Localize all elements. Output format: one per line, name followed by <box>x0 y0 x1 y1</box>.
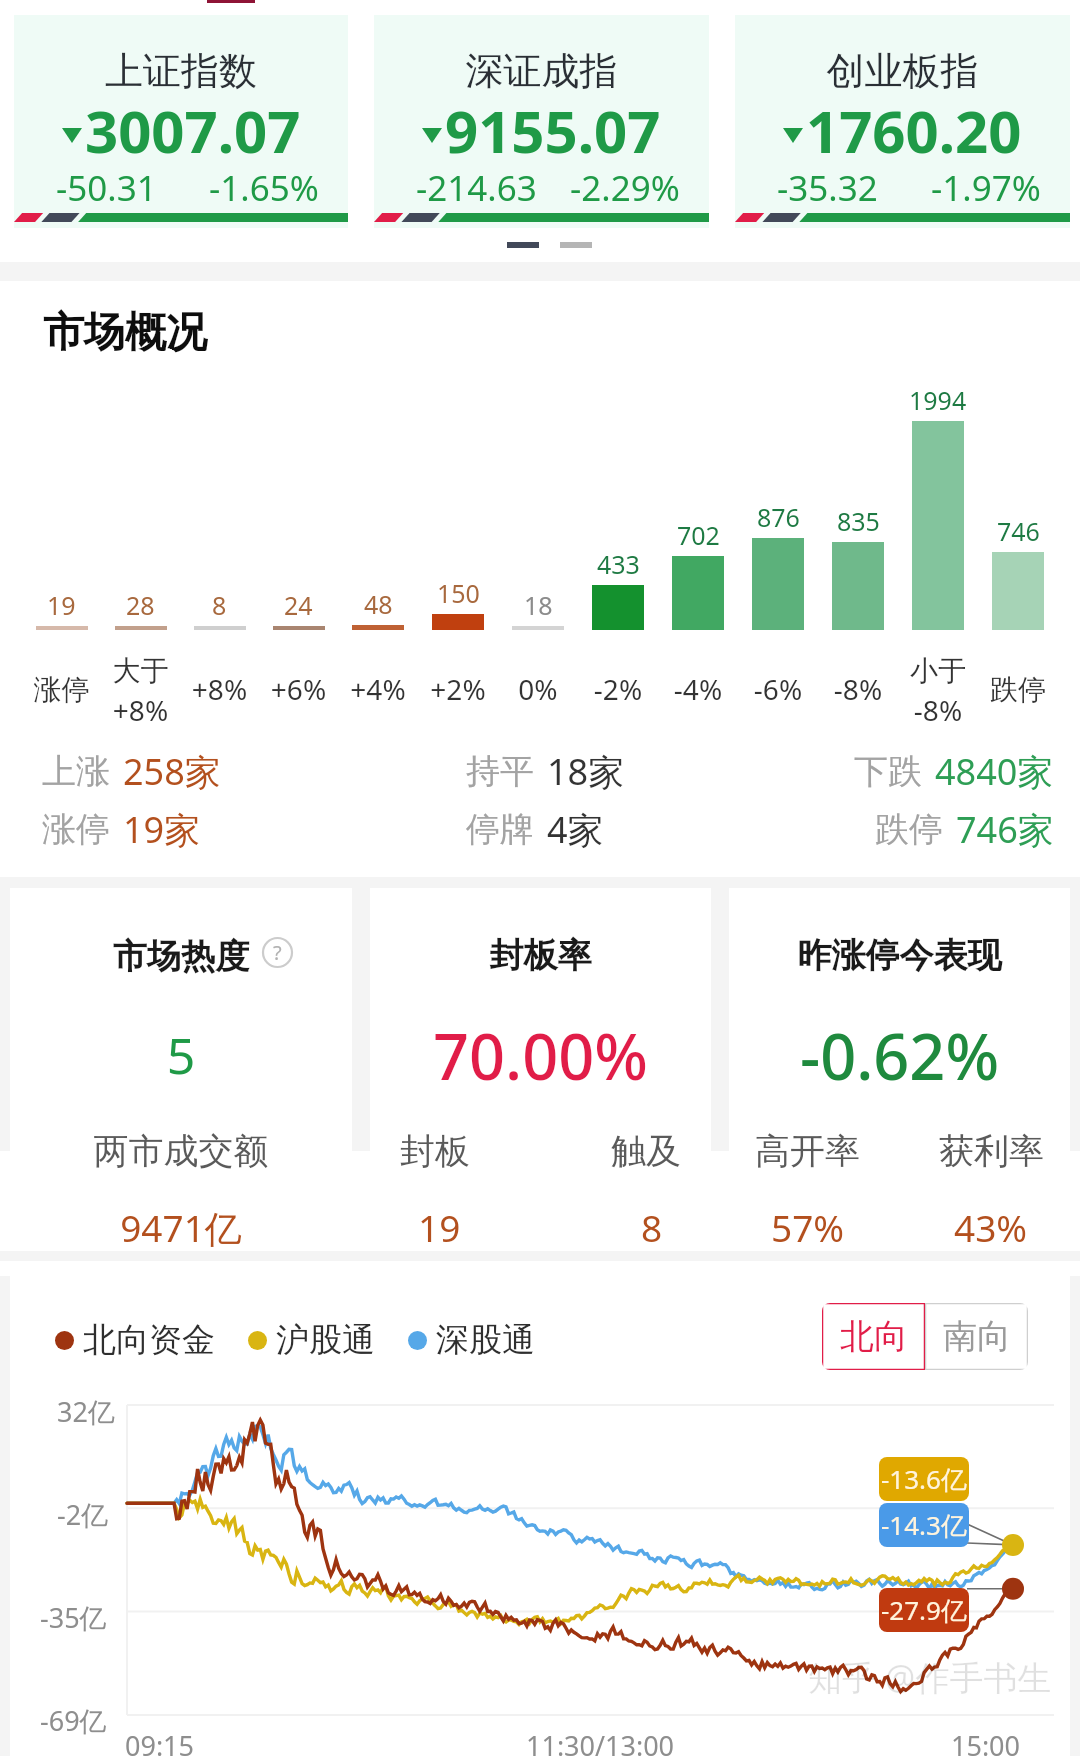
staticText: -27.9亿 <box>881 1592 967 1628</box>
staticText: -69亿 <box>40 1702 107 1739</box>
staticText: -0.62% <box>729 1013 1070 1099</box>
staticText: -2% <box>578 670 658 708</box>
staticText: 昨涨停今表现 <box>729 934 1070 977</box>
staticText: 0% <box>498 670 578 708</box>
staticText: 746 <box>997 514 1040 548</box>
staticText: 11:30/13:00 <box>526 1727 675 1756</box>
staticText: 9471亿 <box>10 1202 352 1253</box>
staticText: -4% <box>658 670 738 708</box>
button[interactable]: 上证指数 <box>14 15 348 228</box>
staticText: 1760.20 <box>806 91 1022 170</box>
staticText: 28 <box>126 588 155 622</box>
staticText: 上证指数 <box>14 47 348 95</box>
staticText: 持平 <box>466 750 534 793</box>
staticText: 48 <box>364 587 393 621</box>
staticText: 18 <box>524 588 553 622</box>
staticText: 43% <box>954 1202 1028 1252</box>
staticText: 两市成交额 <box>10 1129 352 1173</box>
staticText: 涨停 <box>42 808 110 851</box>
staticText: +8% <box>180 670 259 708</box>
staticText: 知乎 @作手书生 <box>808 1654 1052 1700</box>
staticText: 大于 +8% <box>101 653 180 725</box>
staticText: 9155.07 <box>445 91 661 170</box>
staticText: 跌停 <box>978 672 1058 707</box>
staticText: 8 <box>641 1202 663 1252</box>
staticText: 深股通 <box>436 1319 535 1361</box>
staticText: 小于 -8% <box>898 653 978 725</box>
staticText: 19 <box>418 1202 461 1252</box>
staticText: 15:00 <box>951 1727 1021 1756</box>
button[interactable]: 深股通 <box>408 1319 535 1361</box>
button[interactable]: 南向 <box>925 1303 1028 1370</box>
staticText: -6% <box>738 670 818 708</box>
staticText: 北向 <box>840 1315 908 1358</box>
button[interactable]: 昨涨停今表现 <box>729 888 1070 1251</box>
staticText: +2% <box>418 670 498 708</box>
staticText: 跌停 <box>875 808 943 851</box>
staticText: 150 <box>437 576 480 610</box>
staticText: 北向资金 <box>83 1319 215 1361</box>
staticText: -1.97% <box>931 164 1041 212</box>
staticText: -14.3亿 <box>881 1507 967 1543</box>
button[interactable]: 北向资金 <box>55 1319 215 1361</box>
staticText: -35亿 <box>40 1599 107 1636</box>
staticText: 876 <box>757 500 800 534</box>
staticText: 3007.07 <box>85 91 301 170</box>
staticText: -214.63 <box>416 164 537 212</box>
staticText: 市场概况 <box>43 307 207 359</box>
staticText: -2亿 <box>57 1496 109 1533</box>
staticText: 702 <box>677 518 720 552</box>
staticText: 下跌 <box>854 750 922 793</box>
button[interactable]: 说明 <box>262 937 293 968</box>
staticText: -35.32 <box>777 164 878 212</box>
staticText: 4840家 <box>935 747 1054 796</box>
staticText: 深证成指 <box>374 47 709 95</box>
staticText: 433 <box>597 547 640 581</box>
staticText: +4% <box>338 670 418 708</box>
button[interactable]: 沪股通 <box>248 1319 375 1361</box>
staticText: 835 <box>837 504 880 538</box>
staticText: 24 <box>284 588 313 622</box>
staticText: 32亿 <box>57 1393 115 1430</box>
staticText: 上涨 <box>42 750 110 793</box>
staticText: 市场热度 <box>10 935 352 978</box>
staticText: 4家 <box>547 805 604 854</box>
staticText: 南向 <box>943 1315 1011 1358</box>
button[interactable]: 深证成指 <box>374 15 709 228</box>
button[interactable]: 创业板指 <box>735 15 1070 228</box>
staticText: 1994 <box>909 383 967 417</box>
staticText: 获利率 <box>939 1129 1044 1173</box>
staticText: 19家 <box>123 805 201 854</box>
staticText: -50.31 <box>56 164 157 212</box>
staticText: 沪股通 <box>276 1319 375 1361</box>
staticText: 09:15 <box>125 1727 195 1756</box>
staticText: 封板率 <box>370 934 711 977</box>
staticText: -2.29% <box>570 164 680 212</box>
staticText: +6% <box>259 670 338 708</box>
staticText: 高开率 <box>755 1129 860 1173</box>
staticText: 18家 <box>547 747 625 796</box>
staticText: ? <box>273 939 282 966</box>
staticText: 5 <box>10 1021 352 1089</box>
staticText: 创业板指 <box>735 47 1070 95</box>
staticText: 70.00% <box>370 1013 711 1099</box>
staticText: 746家 <box>956 805 1054 854</box>
staticText: 258家 <box>123 747 221 796</box>
button[interactable]: 市场热度 <box>10 888 352 1251</box>
staticText: 封板 <box>400 1129 470 1173</box>
button[interactable]: 北向 <box>822 1303 925 1370</box>
staticText: 19 <box>47 588 76 622</box>
staticText: 涨停 <box>22 672 101 707</box>
staticText: -13.6亿 <box>881 1461 967 1497</box>
staticText: 触及 <box>611 1129 681 1173</box>
staticText: 57% <box>771 1202 845 1252</box>
staticText: 停牌 <box>466 808 534 851</box>
button[interactable]: 封板率 <box>370 888 711 1251</box>
staticText: -1.65% <box>209 164 319 212</box>
staticText: -8% <box>818 670 898 708</box>
staticText: 8 <box>212 588 227 622</box>
